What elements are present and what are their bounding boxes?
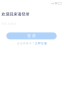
staticText: 还没有账号？ [17, 42, 35, 45]
button[interactable]: 登 录 [6, 32, 57, 39]
staticText: 立即注册 [35, 42, 47, 45]
staticText: 登 录 [27, 33, 36, 38]
button[interactable]: 立即注册 [35, 42, 47, 45]
staticText: 登录后继续 [1, 22, 16, 25]
staticText: 欢迎回来请登录 [1, 12, 29, 17]
